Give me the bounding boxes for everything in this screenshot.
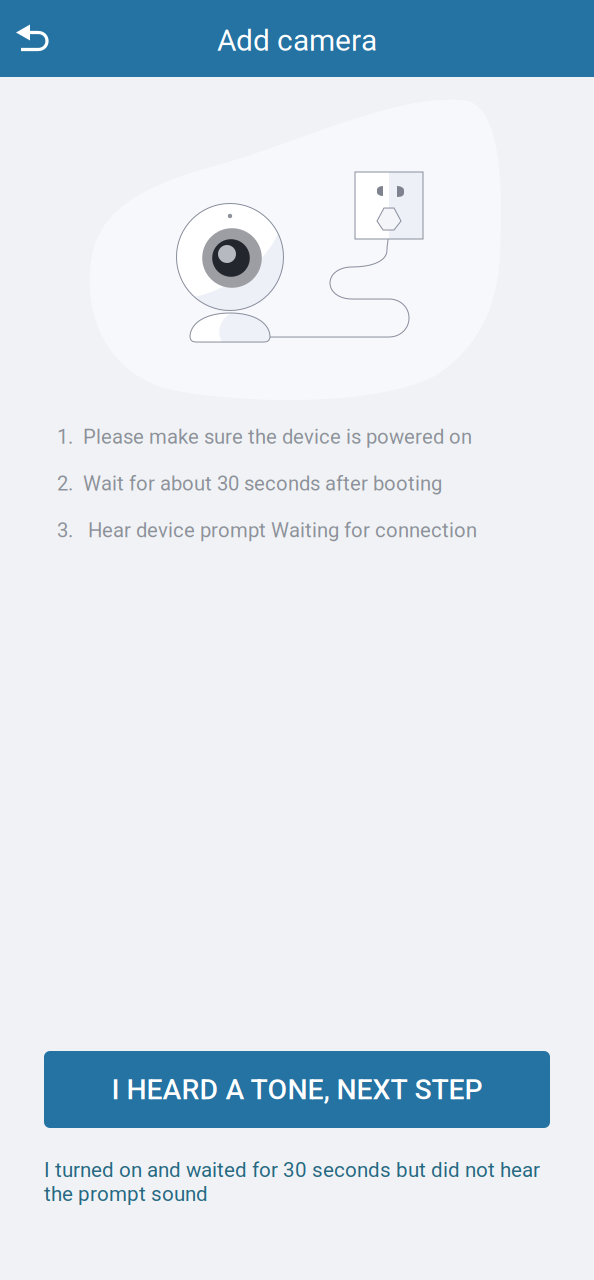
- staticText: I HEARD A TONE, NEXT STEP: [111, 1073, 482, 1106]
- staticText: 1. Please make sure the device is powere…: [57, 425, 472, 449]
- button[interactable]: I turned on and waited for 30 seconds bu…: [44, 1158, 544, 1206]
- button[interactable]: I HEARD A TONE, NEXT STEP: [44, 1051, 550, 1128]
- button[interactable]: Back: [5, 10, 61, 66]
- staticText: 2. Wait for about 30 seconds after booti…: [57, 472, 442, 496]
- staticText: I turned on and waited for 30 seconds bu…: [44, 1158, 540, 1206]
- staticText: 3. Hear device prompt Waiting for connec…: [57, 518, 477, 542]
- staticText: Add camera: [217, 23, 377, 58]
